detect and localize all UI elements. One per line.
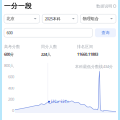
staticText: 400 <box>8 85 14 91</box>
staticText: 224人 <box>41 52 51 57</box>
staticText: 600分 <box>4 52 14 57</box>
staticText: 600 <box>8 74 14 79</box>
staticText: 600分 224人 <box>51 100 70 103</box>
staticText: 一分一段 <box>4 2 32 10</box>
staticText: 北京 <box>6 16 14 21</box>
button[interactable]: 物理组合 <box>80 14 116 23</box>
staticText: 高考分数 <box>4 44 20 49</box>
staticText: 0 <box>12 108 14 113</box>
staticText: 2025本科 <box>45 16 61 21</box>
staticText: 800人 <box>4 63 14 68</box>
button[interactable]: 查询 <box>95 28 116 37</box>
button[interactable]: 北京 <box>4 14 40 23</box>
staticText: 查询 <box>101 30 109 35</box>
staticText: 同分人数 <box>41 44 57 49</box>
staticText: 数据说明 <box>96 4 112 8</box>
staticText: 600 <box>6 30 12 35</box>
staticText: 200 <box>8 96 14 102</box>
button[interactable]: 2025本科 <box>42 14 78 23</box>
staticText: 物理组合 <box>83 16 99 21</box>
staticText: 11660-11883 <box>77 52 98 57</box>
staticText: 排名区间 <box>77 44 93 49</box>
button[interactable]: 数据说明 <box>96 4 116 8</box>
staticText: 本科最低分数线434分 <box>75 64 113 69</box>
